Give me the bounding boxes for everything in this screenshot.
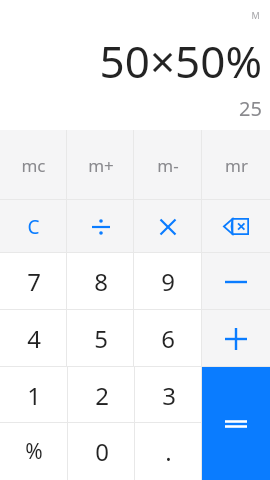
staticText: m- [157,154,179,177]
staticText: 7 [27,265,41,298]
staticText: m+ [88,154,114,177]
staticText: 8 [94,265,108,298]
button[interactable]: Minus [202,253,270,310]
button[interactable]: 7 [0,253,67,310]
button[interactable]: % [0,423,68,480]
button[interactable]: Multiply [134,200,202,253]
button[interactable]: 2 [68,367,135,423]
button[interactable]: Plus [202,310,270,367]
button[interactable]: 4 [0,310,67,367]
staticText: 0 [95,435,109,468]
staticText: 1 [27,379,41,412]
button[interactable]: m+ [67,130,134,200]
staticText: 50×50% [99,31,262,91]
staticText: mr [225,154,248,177]
staticText: 4 [27,322,41,355]
button[interactable]: 6 [134,310,202,367]
button[interactable]: m- [134,130,202,200]
staticText: 6 [161,322,175,355]
button[interactable]: 5 [67,310,134,367]
staticText: % [25,437,43,466]
button[interactable]: Backspace [202,200,270,253]
button[interactable]: Equals [202,367,270,480]
button[interactable]: . [135,423,202,480]
button[interactable]: C [0,200,67,253]
button[interactable]: 9 [134,253,202,310]
button[interactable]: 8 [67,253,134,310]
staticText: mc [21,154,46,177]
staticText: M [251,9,260,21]
button[interactable]: 3 [135,367,202,423]
button[interactable]: mc [0,130,67,200]
staticText: 3 [162,379,176,412]
staticText: C [27,214,40,240]
staticText: 5 [94,322,108,355]
staticText: 25 [239,95,262,122]
staticText: . [165,435,172,468]
staticText: 9 [161,265,175,298]
button[interactable]: 1 [0,367,68,423]
button[interactable]: 0 [68,423,135,480]
button[interactable]: mr [202,130,270,200]
staticText: 2 [95,379,109,412]
button[interactable]: Divide [67,200,134,253]
